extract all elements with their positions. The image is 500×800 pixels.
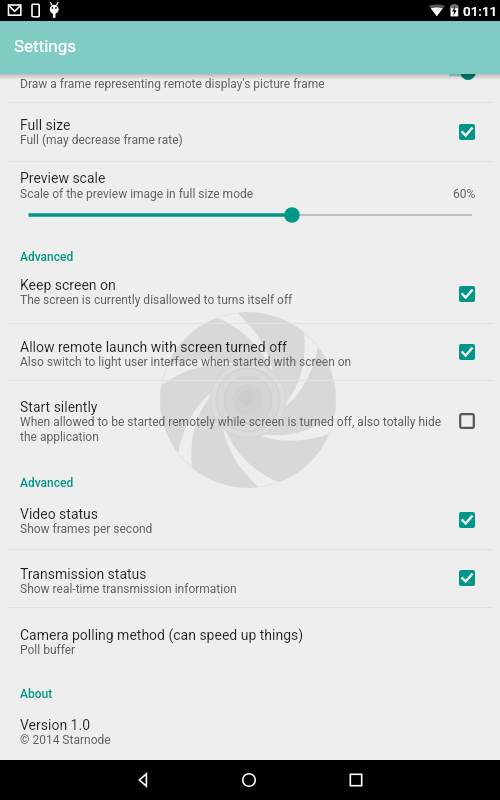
staticText: Poll buffer: [20, 643, 76, 657]
staticText: Transmission status: [20, 566, 147, 582]
staticText: Allow remote launch with screen turned o…: [20, 339, 287, 355]
staticText: Draw a frame representing remote display…: [20, 77, 325, 91]
staticText: Video status: [20, 506, 99, 522]
staticText: Advanced: [20, 250, 74, 264]
button[interactable]: Video status: [0, 490, 500, 549]
button[interactable]: Keep screen on: [0, 265, 500, 323]
button[interactable]: Transmission status: [0, 549, 500, 607]
staticText: Also switch to light user interface when…: [20, 355, 352, 369]
button[interactable]: Allow remote launch with screen turned o…: [0, 323, 500, 380]
button[interactable]: Version 1.0: [0, 704, 500, 754]
staticText: Preview scale: [20, 170, 106, 186]
button[interactable]: Back: [123, 760, 163, 800]
staticText: About: [20, 687, 53, 701]
staticText: Full size: [20, 117, 71, 133]
staticText: Version 1.0: [20, 717, 91, 733]
button[interactable]: Home: [229, 760, 269, 800]
staticText: Settings: [14, 36, 77, 56]
staticText: © 2014 Starnode: [20, 733, 111, 747]
staticText: Start silently: [20, 399, 98, 415]
staticText: The screen is currently disallowed to tu…: [20, 293, 293, 307]
button[interactable]: Full size: [0, 102, 500, 161]
staticText: 01:11: [463, 3, 498, 19]
staticText: Advanced: [20, 476, 74, 490]
staticText: 60%: [453, 187, 476, 201]
staticText: Show real-time transmission information: [20, 582, 237, 596]
staticText: Scale of the preview image in full size …: [20, 187, 453, 201]
staticText: Camera polling method (can speed up thin…: [20, 627, 304, 643]
staticText: Keep screen on: [20, 277, 116, 293]
staticText: Show frames per second: [20, 522, 153, 536]
staticText: Full (may decrease frame rate): [20, 133, 183, 147]
staticText: When allowed to be started remotely whil…: [20, 415, 442, 444]
button[interactable]: Start silently: [0, 380, 500, 462]
button[interactable]: Preview scale: [0, 161, 500, 235]
button[interactable]: Recents: [336, 760, 376, 800]
button[interactable]: Camera polling method (can speed up thin…: [0, 607, 500, 665]
